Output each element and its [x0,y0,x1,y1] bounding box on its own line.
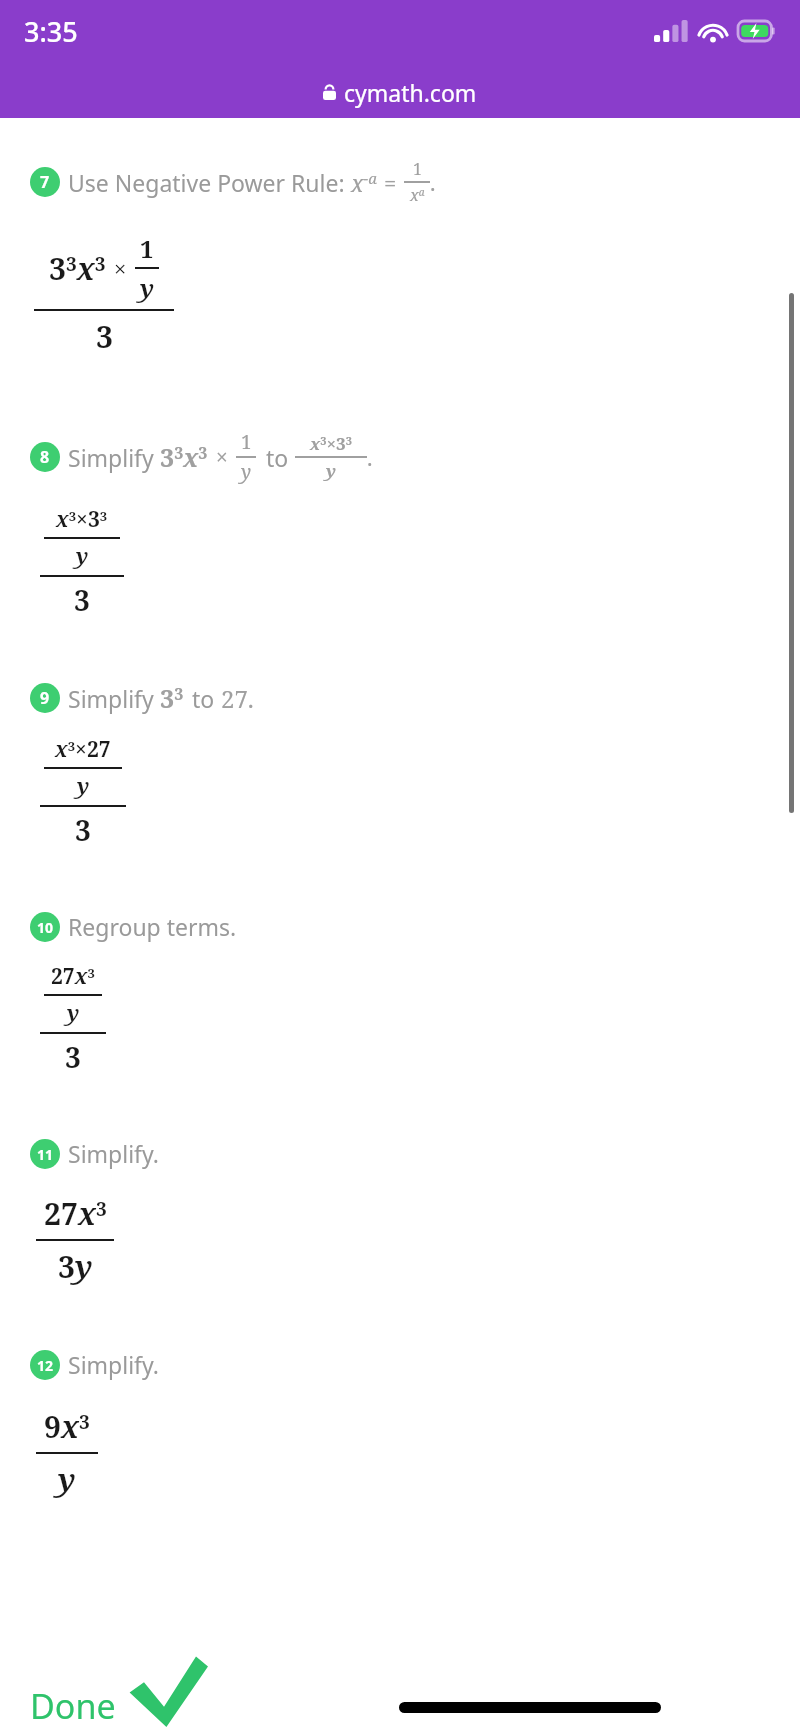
staticText: Use Negative Power Rule: [68,167,351,198]
staticText: 1 [140,232,154,265]
button[interactable]: Address bar cymath.com [0,66,800,118]
staticText: y [77,772,90,801]
staticText: Done [30,1683,116,1729]
staticText: 7 [40,171,50,193]
staticText: 8 [40,446,50,468]
staticText: . [430,167,436,197]
staticText: y [67,999,80,1028]
staticText: 3 [96,316,113,357]
staticText: × [216,443,228,472]
staticText: Regroup terms. [68,911,237,942]
button[interactable]: Done [30,1655,208,1729]
staticText: to [192,683,221,714]
staticText: 12 [37,1356,54,1375]
staticText: 33x3 [49,248,106,289]
staticText: 1 [413,158,422,180]
staticText: 11 [37,1145,54,1164]
staticText: 33x3 [160,440,208,474]
staticText: = [384,167,397,197]
staticText: xa [410,184,425,206]
staticText: 1 [241,429,252,455]
staticText: Simplify [68,442,160,473]
staticText: x3×27 [55,735,111,764]
staticText: 33 [160,681,184,715]
staticText: 3 [74,581,90,619]
staticText: y [140,271,155,304]
staticText: x3×33 [310,432,352,455]
staticText: 10 [37,918,54,937]
staticText: y [326,459,336,482]
staticText: y [76,542,89,571]
staticText: Simplify [68,683,160,714]
staticText: 27x3 [44,1193,107,1234]
staticText: Simplify. [68,1349,159,1380]
staticText: y [58,1459,76,1500]
staticText: 3 [75,811,91,849]
staticText: 27. [221,682,254,715]
staticText: 27x3 [51,962,95,991]
staticText: to [266,442,295,473]
staticText: 3 [65,1038,81,1076]
staticText: x3×33 [56,505,108,534]
staticText: x−a [351,167,377,198]
staticText: × [114,253,127,283]
staticText: y [241,459,252,485]
staticText: cymath.com [344,77,477,108]
staticText: 3:35 [24,13,78,50]
staticText: Simplify. [68,1138,159,1169]
staticText: . [367,442,373,472]
staticText: 9x3 [44,1406,90,1447]
staticText: 9 [40,687,50,709]
staticText: 3y [58,1246,93,1287]
